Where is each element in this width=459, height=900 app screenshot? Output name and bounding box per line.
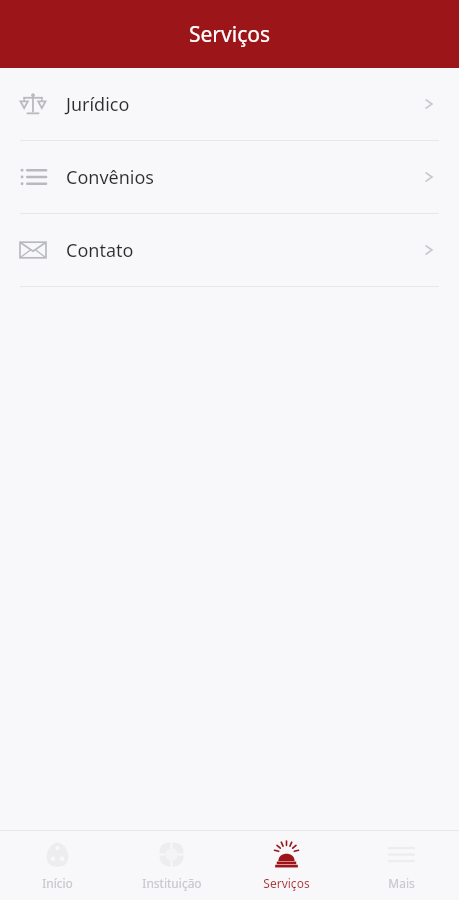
staticText: Instituição — [142, 875, 202, 891]
button[interactable]: Instituição — [114, 831, 229, 900]
other: Mais — [388, 841, 415, 868]
staticText: Mais — [388, 875, 415, 891]
other: Instituição — [158, 841, 185, 868]
button[interactable]: Contato — [0, 214, 459, 286]
staticText: Contato — [66, 238, 134, 263]
staticText: Início — [42, 875, 73, 891]
button[interactable]: Serviços — [229, 831, 344, 900]
staticText: Serviços — [263, 875, 310, 891]
button[interactable]: Início — [0, 831, 114, 900]
button[interactable]: Convênios — [0, 141, 459, 213]
other: Serviços — [273, 841, 300, 868]
other: Abrir — [421, 242, 437, 258]
button[interactable]: Jurídico — [0, 68, 459, 140]
staticText: Jurídico — [66, 92, 130, 117]
other: Abrir — [421, 96, 437, 112]
other: Abrir — [421, 169, 437, 185]
staticText: Convênios — [66, 165, 154, 190]
other: Início — [44, 841, 71, 868]
button[interactable]: Mais — [344, 831, 459, 900]
staticText: Serviços — [189, 20, 270, 49]
